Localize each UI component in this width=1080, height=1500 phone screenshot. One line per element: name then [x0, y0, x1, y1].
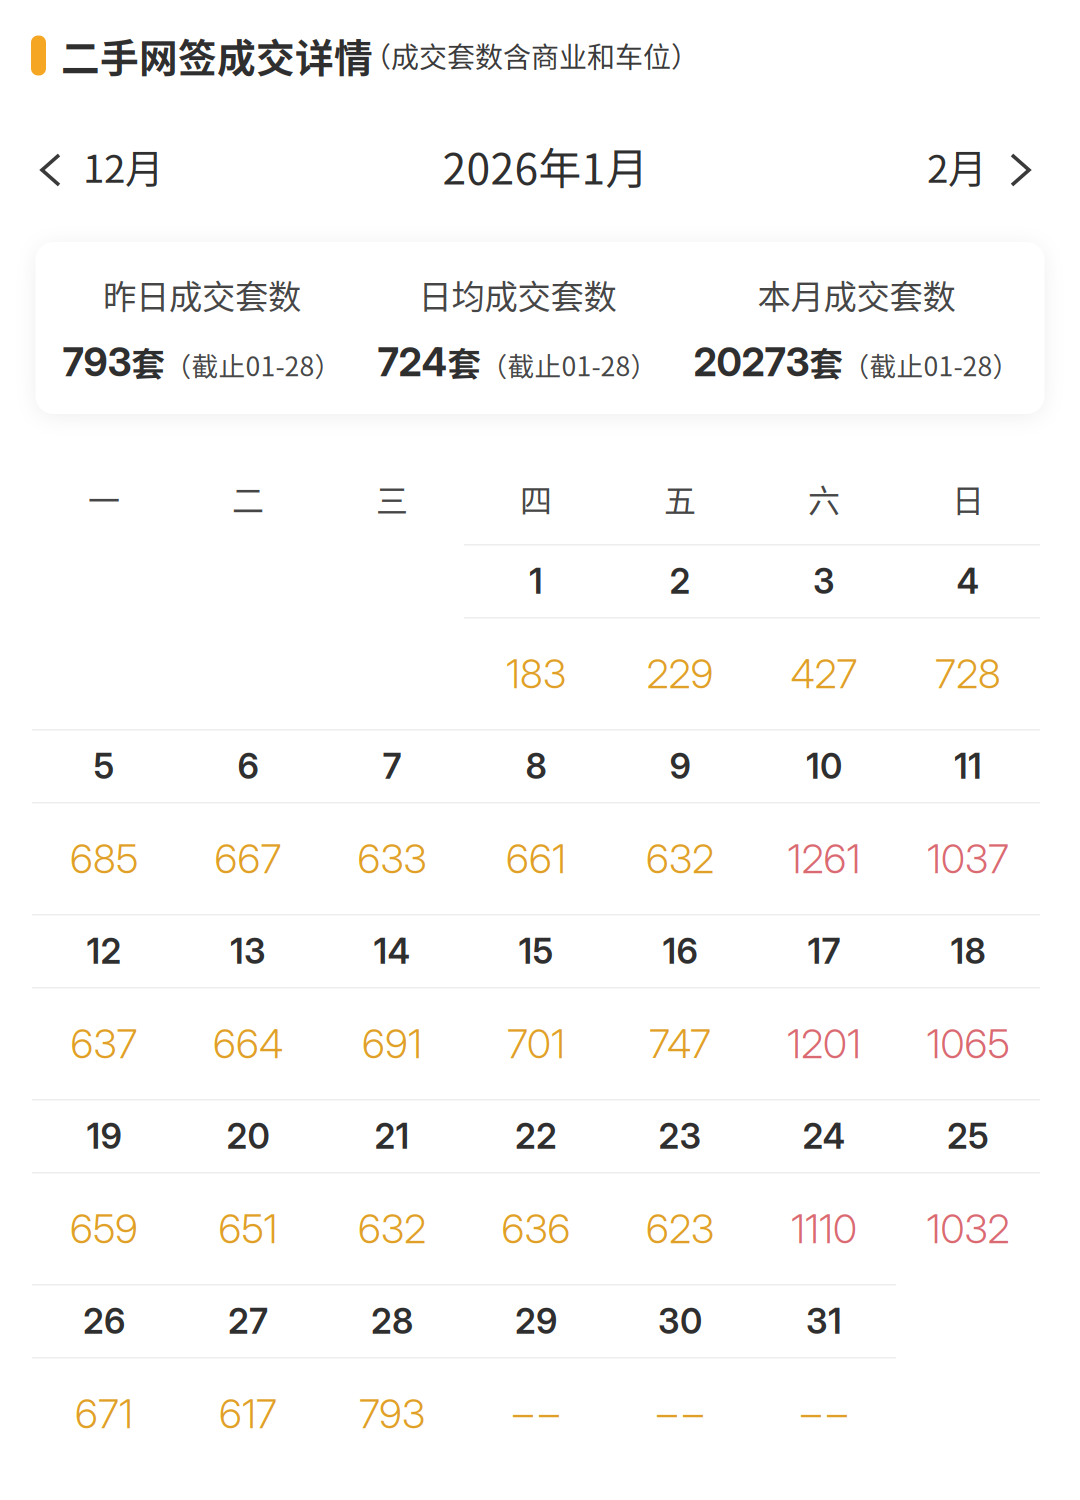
- staticText: 22: [515, 1115, 557, 1157]
- button[interactable]: 26日成交套数: [32, 1358, 176, 1469]
- button[interactable]: 30日成交套数: [608, 1358, 752, 1469]
- button[interactable]: 17日成交套数: [752, 988, 896, 1099]
- staticText: 3: [813, 560, 835, 602]
- button[interactable]: 18: [896, 915, 1040, 987]
- button[interactable]: 30: [608, 1285, 752, 1357]
- staticText: 19: [86, 1115, 121, 1157]
- staticText: 8: [525, 745, 546, 787]
- button[interactable]: 17: [752, 915, 896, 987]
- staticText: 701: [507, 1020, 565, 1068]
- button[interactable]: 21: [320, 1100, 464, 1172]
- button[interactable]: 25: [896, 1100, 1040, 1172]
- button[interactable]: 2: [608, 545, 752, 617]
- button[interactable]: 2日成交套数: [608, 618, 752, 729]
- staticText: 17: [807, 930, 840, 972]
- button[interactable]: 8: [464, 730, 608, 802]
- button[interactable]: 31日成交套数: [752, 1358, 896, 1469]
- button[interactable]: 7: [320, 730, 464, 802]
- staticText: 日: [952, 475, 984, 522]
- staticText: 2026年1月: [442, 135, 648, 197]
- button[interactable]: 4: [896, 545, 1040, 617]
- staticText: 15: [518, 930, 553, 972]
- button[interactable]: 9日成交套数: [608, 803, 752, 914]
- button[interactable]: 29日成交套数: [464, 1358, 608, 1469]
- staticText: 套: [131, 337, 164, 386]
- button[interactable]: 23: [608, 1100, 752, 1172]
- button[interactable]: 28日成交套数: [320, 1358, 464, 1469]
- button[interactable]: 28: [320, 1285, 464, 1357]
- staticText: 427: [790, 650, 857, 698]
- button[interactable]: 24日成交套数: [752, 1173, 896, 1284]
- staticText: 661: [506, 835, 566, 883]
- button[interactable]: 6: [176, 730, 320, 802]
- button[interactable]: 27日成交套数: [176, 1358, 320, 1469]
- button[interactable]: 24: [752, 1100, 896, 1172]
- staticText: 623: [646, 1205, 714, 1253]
- button[interactable]: 13日成交套数: [176, 988, 320, 1099]
- staticText: 1: [529, 560, 543, 602]
- staticText: 4: [956, 560, 979, 602]
- button[interactable]: 26: [32, 1285, 176, 1357]
- button[interactable]: 3日成交套数: [752, 618, 896, 729]
- button[interactable]: 18日成交套数: [896, 988, 1040, 1099]
- button[interactable]: 15: [464, 915, 608, 987]
- staticText: 617: [219, 1390, 277, 1438]
- button[interactable]: 27: [176, 1285, 320, 1357]
- button[interactable]: 29: [464, 1285, 608, 1357]
- button[interactable]: 23日成交套数: [608, 1173, 752, 1284]
- staticText: 30: [658, 1300, 702, 1342]
- button[interactable]: 6日成交套数: [176, 803, 320, 914]
- staticText: （截止01-28）: [842, 345, 1019, 384]
- button[interactable]: 4日成交套数: [896, 618, 1040, 729]
- staticText: 651: [218, 1205, 277, 1253]
- button[interactable]: 16日成交套数: [608, 988, 752, 1099]
- staticText: 本月成交套数: [757, 270, 955, 318]
- button[interactable]: 20日成交套数: [176, 1173, 320, 1284]
- button[interactable]: 3: [752, 545, 896, 617]
- button[interactable]: 25日成交套数: [896, 1173, 1040, 1284]
- button[interactable]: 12月: [0, 123, 206, 209]
- button[interactable]: 22: [464, 1100, 608, 1172]
- button[interactable]: 8日成交套数: [464, 803, 608, 914]
- button[interactable]: 15日成交套数: [464, 988, 608, 1099]
- button[interactable]: 13: [176, 915, 320, 987]
- staticText: 31: [806, 1300, 842, 1342]
- button[interactable]: 20: [176, 1100, 320, 1172]
- button[interactable]: 12: [32, 915, 176, 987]
- staticText: 724: [377, 339, 447, 385]
- button[interactable]: 9: [608, 730, 752, 802]
- button[interactable]: 10: [752, 730, 896, 802]
- button[interactable]: 19日成交套数: [32, 1173, 176, 1284]
- button[interactable]: 1日成交套数: [464, 618, 608, 729]
- staticText: 12月: [83, 138, 164, 194]
- staticText: 1261: [787, 835, 860, 883]
- button[interactable]: 14: [320, 915, 464, 987]
- button[interactable]: 5日成交套数: [32, 803, 176, 914]
- staticText: 1032: [926, 1205, 1009, 1253]
- button[interactable]: 2月: [885, 123, 1080, 209]
- button[interactable]: 16: [608, 915, 752, 987]
- button[interactable]: 11日成交套数: [896, 803, 1040, 914]
- staticText: 20273: [693, 339, 809, 385]
- staticText: – –: [657, 1390, 703, 1438]
- staticText: 28: [371, 1300, 413, 1342]
- staticText: 5: [93, 745, 114, 787]
- button[interactable]: 11: [896, 730, 1040, 802]
- staticText: 747: [649, 1020, 711, 1068]
- staticText: 664: [213, 1020, 283, 1068]
- button[interactable]: 7日成交套数: [320, 803, 464, 914]
- button[interactable]: 22日成交套数: [464, 1173, 608, 1284]
- button[interactable]: 12日成交套数: [32, 988, 176, 1099]
- staticText: 昨日成交套数: [103, 270, 301, 318]
- button[interactable]: 31: [752, 1285, 896, 1357]
- button[interactable]: 19: [32, 1100, 176, 1172]
- button[interactable]: 14日成交套数: [320, 988, 464, 1099]
- button[interactable]: 5: [32, 730, 176, 802]
- button[interactable]: 1: [464, 545, 608, 617]
- button[interactable]: 10日成交套数: [752, 803, 896, 914]
- staticText: 套: [447, 337, 480, 386]
- button[interactable]: 21日成交套数: [320, 1173, 464, 1284]
